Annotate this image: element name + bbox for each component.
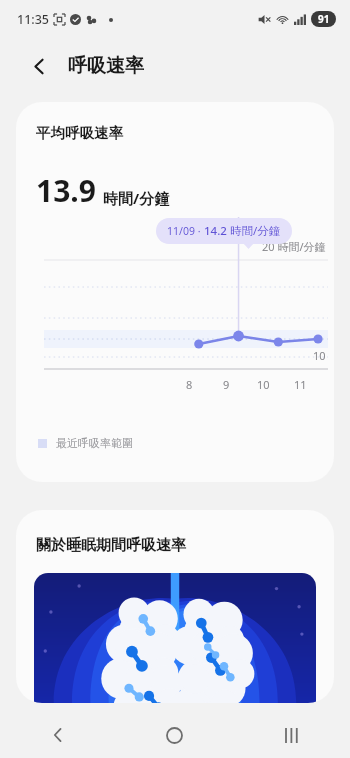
button[interactable]: 關於睡眠期間呼吸速率 [16, 510, 334, 703]
staticText: 91 [318, 12, 330, 26]
staticText: 13.9 [36, 170, 96, 211]
button[interactable]: 平均呼吸速率 [16, 102, 334, 482]
staticText: 9 [223, 377, 230, 392]
staticText: 平均呼吸速率 [36, 124, 123, 142]
button[interactable]: Back [22, 49, 56, 83]
staticText: 時間/分鐘 [103, 188, 170, 208]
staticText: 關於睡眠期間呼吸速率 [36, 536, 186, 555]
staticText: 8 [186, 377, 193, 392]
staticText: 11/09 · [167, 224, 204, 238]
staticText: 20 時間/分鐘 [262, 239, 326, 254]
staticText: 時間/分鐘 [230, 223, 281, 239]
staticText: 最近呼吸率範圍 [56, 436, 133, 450]
button[interactable]: Recent apps [233, 712, 350, 758]
staticText: 11 [294, 377, 307, 392]
button[interactable]: Back [0, 712, 116, 758]
staticText: 14.2 [204, 223, 230, 239]
staticText: 11:35 [17, 11, 50, 28]
staticText: 10 [313, 348, 326, 363]
button[interactable]: 11/09 · [167, 223, 281, 239]
staticText: 10 [257, 377, 270, 392]
button[interactable]: Home [116, 712, 233, 758]
staticText: 呼吸速率 [68, 54, 144, 78]
